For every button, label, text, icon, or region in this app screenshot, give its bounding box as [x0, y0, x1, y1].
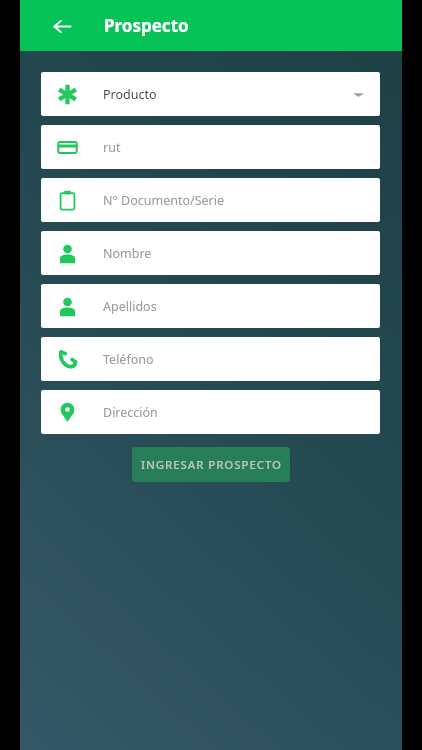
- staticText: Apellidos: [103, 298, 157, 315]
- staticText: Producto: [103, 86, 157, 103]
- button[interactable]: Back: [42, 6, 82, 46]
- staticText: Dirección: [103, 404, 158, 421]
- staticText: N° Documento/Serie: [103, 192, 225, 209]
- staticText: Teléfono: [103, 351, 154, 368]
- staticText: Prospecto: [104, 14, 189, 37]
- staticText: Nombre: [103, 245, 152, 262]
- button[interactable]: Nombre: [41, 231, 380, 275]
- button[interactable]: Apellidos: [41, 284, 380, 328]
- button[interactable]: Teléfono: [41, 337, 380, 381]
- staticText: INGRESAR PROSPECTO: [141, 457, 282, 473]
- button[interactable]: Dirección: [41, 390, 380, 434]
- button[interactable]: INGRESAR PROSPECTO: [132, 447, 290, 482]
- button[interactable]: Producto: [41, 72, 380, 116]
- staticText: rut: [103, 139, 121, 156]
- button[interactable]: rut: [41, 125, 380, 169]
- button[interactable]: N° Documento/Serie: [41, 178, 380, 222]
